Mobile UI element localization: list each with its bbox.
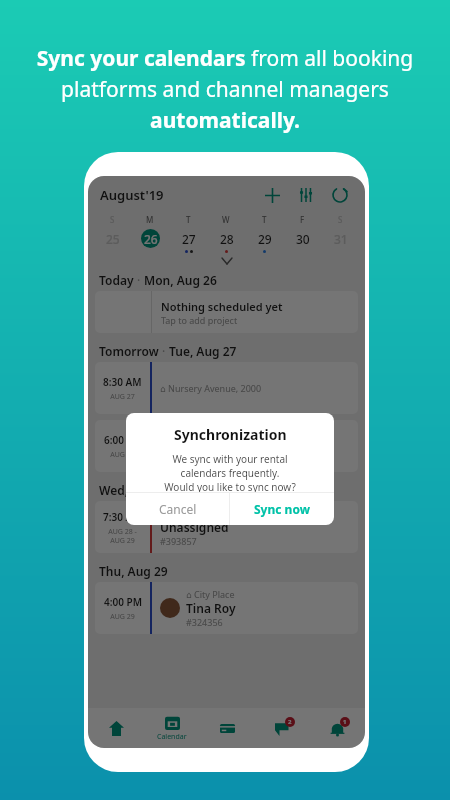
staticText: Tomorrow (99, 343, 159, 359)
staticText: #393857 (160, 535, 197, 547)
staticText: Wed, Aug 28 (99, 482, 172, 498)
staticText: Cancel (159, 501, 197, 517)
button[interactable]: 30 (283, 229, 321, 250)
staticText: W (222, 214, 230, 225)
button[interactable]: 4:00 PM (95, 582, 358, 634)
staticText: 30 (296, 231, 310, 247)
staticText: August'19 (100, 186, 164, 204)
staticText: 29 (258, 231, 272, 247)
button[interactable]: Payments (200, 708, 255, 748)
staticText: Nothing scheduled yet (161, 299, 283, 314)
button[interactable]: Nothing scheduled yet (95, 291, 358, 333)
staticText: S (338, 214, 343, 225)
staticText: 4:00 PM (104, 595, 142, 609)
button[interactable]: Expand calendar (88, 253, 365, 269)
staticText: Tue, Aug 27 (169, 343, 237, 359)
staticText: T (186, 214, 191, 225)
staticText: 6:00 PM (104, 433, 142, 447)
button[interactable]: Sync now (230, 493, 334, 525)
staticText: AUG 28 - AUG 29 (108, 527, 137, 545)
staticText: AUG 27 (110, 392, 135, 402)
staticText: Tina Roy (186, 600, 236, 616)
staticText: Unassigned (160, 519, 229, 535)
staticText: 1 (343, 718, 347, 726)
staticText: Sync your calendars from all booking pla… (24, 44, 426, 134)
staticText: S (110, 214, 115, 225)
staticText: M (146, 214, 154, 225)
staticText: Calendar (157, 732, 187, 742)
staticText: 26 (144, 231, 158, 247)
staticText: Today (99, 272, 134, 288)
staticText: 25 (106, 231, 120, 247)
button[interactable]: Messages (255, 708, 310, 748)
staticText: #324356 (186, 616, 223, 628)
button[interactable]: Refresh (327, 182, 353, 208)
staticText: Thu, Aug 29 (99, 563, 168, 579)
button[interactable]: 26 (131, 229, 169, 250)
staticText: T (262, 214, 267, 225)
staticText: Synchronization (174, 425, 287, 444)
button[interactable]: Calendar (144, 708, 200, 748)
button[interactable]: 7:30 AM (95, 501, 358, 553)
staticText: 31 (334, 231, 348, 247)
button[interactable]: 28 (207, 229, 245, 253)
staticText: ⌂ Beach house (160, 507, 223, 519)
staticText: F (300, 214, 305, 225)
button[interactable]: Cancel (126, 493, 229, 525)
staticText: · (159, 343, 169, 359)
button[interactable]: 27 (169, 229, 207, 253)
staticText: 28 (220, 231, 234, 247)
button[interactable]: 31 (321, 229, 359, 250)
staticText: AUG 27 (110, 450, 135, 460)
button[interactable]: 8:30 AM (95, 362, 358, 414)
button[interactable]: Notifications (310, 708, 365, 748)
button[interactable]: 25 (94, 229, 131, 250)
staticText: ⌂ City Place (186, 588, 235, 600)
staticText: AUG 29 (110, 612, 135, 622)
staticText: 2 (288, 718, 292, 726)
button[interactable]: Filter (293, 182, 319, 208)
staticText: We sync with your rental calendars frequ… (164, 452, 296, 492)
button[interactable]: 29 (245, 229, 283, 253)
staticText: Tap to add project (161, 314, 238, 326)
staticText: Sync now (254, 501, 310, 517)
staticText: 27 (182, 231, 196, 247)
staticText: Mon, Aug 26 (144, 272, 217, 288)
staticText: 7:30 AM (103, 510, 142, 524)
staticText: 8:30 AM (103, 375, 142, 389)
staticText: · (134, 272, 144, 288)
button[interactable]: Add (259, 182, 285, 208)
staticText: ⌂ Nursery Avenue, 2000 (160, 382, 262, 394)
button[interactable]: Home (88, 708, 144, 748)
button[interactable]: 6:00 PM (95, 420, 358, 472)
